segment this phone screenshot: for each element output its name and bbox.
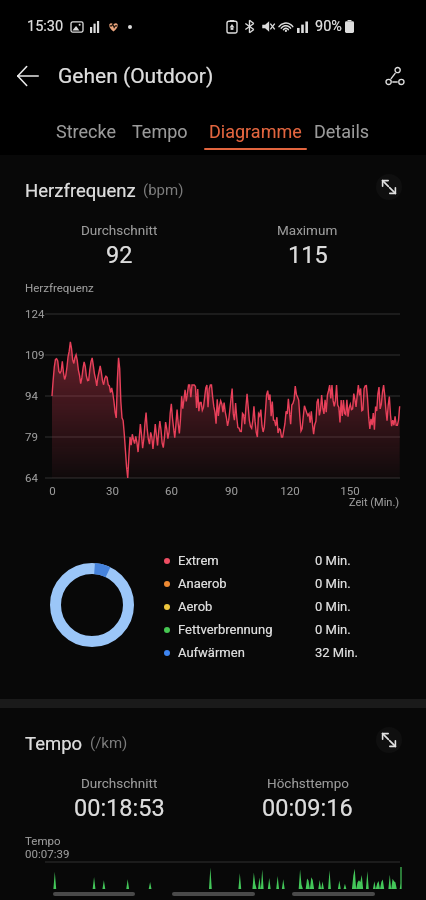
staticText: 109 — [25, 348, 45, 361]
button[interactable]: Tempo — [125, 104, 195, 155]
staticText: (bpm) — [143, 181, 184, 199]
staticText: 120 — [280, 484, 300, 497]
staticText: 0 Min. — [315, 599, 351, 614]
button[interactable]: Share — [382, 63, 408, 89]
staticText: 150 — [340, 484, 360, 497]
button[interactable]: Expand chart — [376, 174, 402, 200]
staticText: 00:07:39 — [25, 847, 70, 860]
staticText: Tempo — [25, 733, 83, 755]
staticText: Durchschnitt — [81, 775, 158, 791]
staticText: Durchschnitt — [81, 222, 158, 238]
staticText: 92 — [106, 241, 133, 269]
button[interactable]: Back — [17, 65, 39, 87]
button[interactable]: Expand chart — [376, 727, 402, 753]
staticText: Anaerob — [178, 576, 227, 591]
staticText: 0 Min. — [315, 622, 351, 637]
staticText: Maximum — [277, 222, 338, 238]
staticText: 79 — [25, 430, 38, 443]
staticText: 32 Min. — [315, 645, 358, 660]
staticText: Extrem — [178, 553, 219, 568]
staticText: 124 — [25, 307, 45, 320]
staticText: Gehen (Outdoor) — [58, 64, 214, 89]
staticText: (/km) — [90, 734, 128, 752]
staticText: 00:09:16 — [262, 794, 353, 822]
staticText: Tempo — [25, 834, 61, 847]
staticText: Aufwärmen — [178, 645, 245, 660]
button[interactable]: Strecke — [49, 104, 123, 155]
staticText: 90% — [315, 18, 342, 35]
staticText: 94 — [25, 389, 38, 402]
staticText: Höchsttempo — [267, 775, 349, 791]
staticText: 15:30 — [27, 18, 64, 35]
staticText: Fettverbrennung — [178, 622, 273, 637]
staticText: 90 — [225, 484, 238, 497]
button[interactable]: Diagramme — [198, 104, 313, 155]
staticText: 00:18:53 — [74, 794, 165, 822]
staticText: 60 — [165, 484, 178, 497]
staticText: 0 Min. — [315, 576, 351, 591]
staticText: Diagramme — [209, 121, 302, 142]
button[interactable]: Details — [307, 104, 377, 155]
staticText: 0 Min. — [315, 553, 351, 568]
staticText: Details — [314, 121, 370, 142]
staticText: Zeit (Min.) — [349, 496, 400, 509]
staticText: Herzfrequenz — [25, 180, 136, 202]
staticText: Aerob — [178, 599, 213, 614]
staticText: 115 — [288, 241, 328, 269]
staticText: 0 — [49, 484, 56, 497]
staticText: Tempo — [132, 121, 188, 142]
staticText: Strecke — [56, 121, 116, 142]
staticText: Herzfrequenz — [25, 281, 94, 294]
staticText: 30 — [106, 484, 119, 497]
staticText: 64 — [25, 471, 38, 484]
